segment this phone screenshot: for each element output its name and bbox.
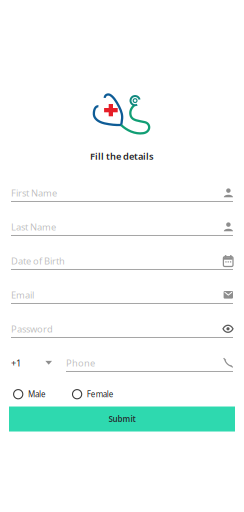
staticText: Date of Birth xyxy=(11,255,65,267)
button[interactable]: Phone xyxy=(66,338,233,372)
button[interactable]: First Name xyxy=(11,168,233,202)
button[interactable]: Last Name xyxy=(11,202,233,236)
staticText: +1 xyxy=(11,357,21,369)
button[interactable]: Male xyxy=(13,389,46,399)
staticText: Password xyxy=(11,323,53,335)
button[interactable]: Password xyxy=(11,304,233,338)
staticText: Fill the details xyxy=(90,150,154,162)
staticText: First Name xyxy=(11,187,57,199)
staticText: Email xyxy=(11,289,34,301)
button[interactable]: +1 xyxy=(11,338,52,372)
button[interactable]: Submit xyxy=(9,406,235,431)
staticText: Male xyxy=(28,389,46,399)
staticText: Last Name xyxy=(11,221,56,233)
staticText: Phone xyxy=(66,357,95,369)
button[interactable]: Female xyxy=(72,389,114,399)
button[interactable]: Email xyxy=(11,270,233,304)
button[interactable]: Date of Birth xyxy=(11,236,233,270)
staticText: Female xyxy=(87,389,114,399)
staticText: Submit xyxy=(108,414,135,424)
